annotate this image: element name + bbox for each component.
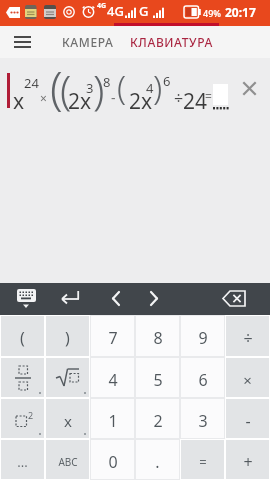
staticText: 24 bbox=[24, 74, 39, 92]
staticText: 6 bbox=[198, 369, 208, 391]
staticText: x bbox=[13, 87, 25, 116]
button[interactable]: 2 bbox=[136, 399, 179, 438]
button[interactable]: ( bbox=[1, 316, 44, 356]
staticText: 4 bbox=[146, 79, 154, 97]
staticText: 1 bbox=[108, 410, 118, 432]
button[interactable]: ABC bbox=[46, 440, 89, 479]
staticText: ÷ bbox=[174, 87, 184, 109]
staticText: КАМЕРА bbox=[62, 34, 114, 50]
button[interactable]: КЛАВИАТУРА bbox=[125, 26, 217, 58]
button[interactable] bbox=[46, 358, 89, 397]
staticText: 4G bbox=[107, 2, 124, 20]
staticText: 2x bbox=[68, 87, 92, 116]
staticText: ) bbox=[93, 61, 105, 117]
button[interactable]: 3 bbox=[181, 399, 224, 438]
staticText: 6 bbox=[163, 72, 171, 90]
staticText: 20:17 bbox=[225, 4, 256, 20]
button[interactable]: КАМЕРА bbox=[54, 26, 122, 58]
button[interactable]: . bbox=[136, 440, 179, 479]
staticText: ... bbox=[17, 453, 28, 471]
staticText: + bbox=[243, 451, 253, 473]
button[interactable]: × bbox=[226, 358, 269, 397]
staticText: = bbox=[199, 453, 207, 471]
staticText: x bbox=[64, 411, 72, 431]
staticText: 2 bbox=[28, 409, 34, 421]
staticText: - bbox=[245, 410, 251, 432]
staticText: ABC bbox=[58, 455, 78, 469]
button[interactable]: 1 bbox=[91, 399, 134, 438]
button[interactable] bbox=[237, 76, 262, 101]
staticText: 7 bbox=[108, 327, 118, 349]
staticText: ÷ bbox=[243, 327, 253, 349]
button[interactable]: 8 bbox=[136, 316, 179, 356]
staticText: × bbox=[243, 370, 252, 390]
staticText: 3 bbox=[198, 410, 208, 432]
staticText: 49% bbox=[203, 7, 221, 19]
button[interactable]: 9 bbox=[181, 316, 224, 356]
button[interactable] bbox=[98, 283, 134, 315]
staticText: 8 bbox=[153, 327, 163, 349]
staticText: ( bbox=[60, 61, 72, 117]
staticText: 8 bbox=[103, 73, 111, 91]
button[interactable] bbox=[52, 283, 88, 315]
button[interactable] bbox=[136, 283, 172, 315]
staticText: ( bbox=[50, 56, 63, 119]
button[interactable]: - bbox=[226, 399, 269, 438]
button[interactable]: 2 bbox=[1, 399, 44, 438]
staticText: 3 bbox=[86, 79, 94, 97]
staticText: 2 bbox=[153, 410, 163, 432]
staticText: ) bbox=[65, 327, 70, 349]
button[interactable]: 5 bbox=[136, 358, 179, 397]
button[interactable]: = bbox=[181, 440, 224, 479]
staticText: × bbox=[40, 90, 47, 106]
staticText: = bbox=[205, 88, 212, 104]
button[interactable] bbox=[1, 358, 44, 397]
button[interactable] bbox=[8, 283, 44, 315]
staticText: 4 bbox=[108, 369, 118, 391]
staticText: КЛАВИАТУРА bbox=[130, 34, 213, 50]
button[interactable]: 0 bbox=[91, 440, 134, 479]
staticText: - bbox=[111, 88, 116, 107]
button[interactable]: ÷ bbox=[226, 316, 269, 356]
staticText: ( bbox=[20, 327, 25, 349]
button[interactable] bbox=[216, 283, 252, 315]
button[interactable]: ) bbox=[46, 316, 89, 356]
staticText: 0 bbox=[108, 451, 118, 473]
staticText: 2x bbox=[129, 87, 153, 116]
button[interactable]: 7 bbox=[91, 316, 134, 356]
staticText: . bbox=[155, 451, 160, 473]
button[interactable]: ... bbox=[1, 440, 44, 479]
staticText: G bbox=[139, 2, 149, 20]
staticText: 4G bbox=[97, 1, 107, 11]
staticText: 24 bbox=[183, 87, 208, 116]
staticText: 9 bbox=[198, 327, 208, 349]
staticText: 5 bbox=[153, 369, 163, 391]
staticText: ) bbox=[153, 65, 163, 110]
button[interactable]: x bbox=[46, 399, 89, 438]
button[interactable]: 6 bbox=[181, 358, 224, 397]
button[interactable]: + bbox=[226, 440, 269, 479]
staticText: ( bbox=[117, 65, 127, 110]
button[interactable]: 4 bbox=[91, 358, 134, 397]
